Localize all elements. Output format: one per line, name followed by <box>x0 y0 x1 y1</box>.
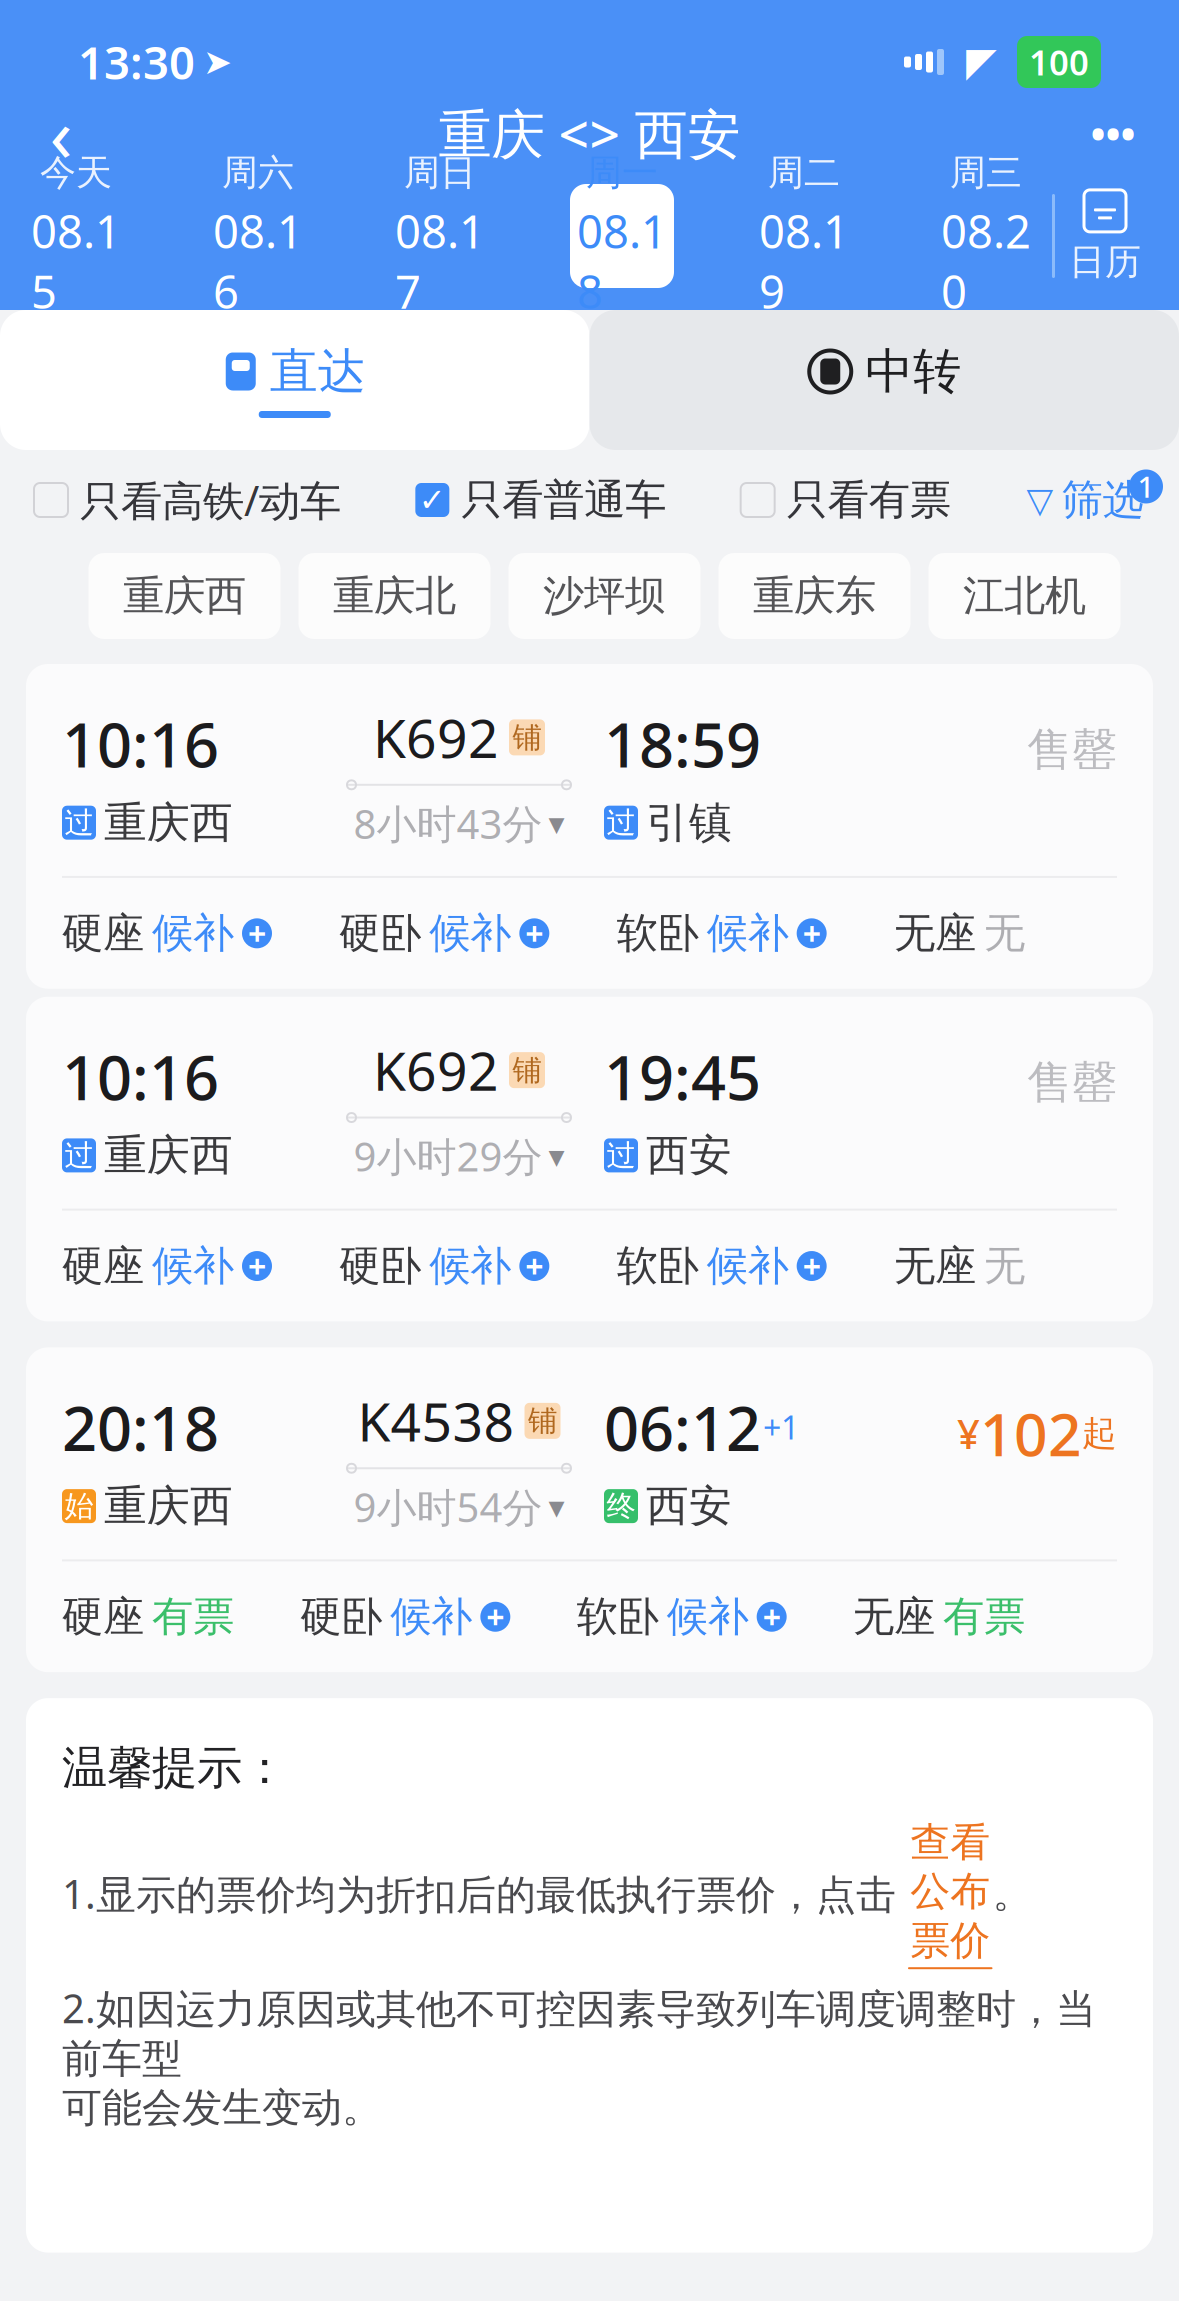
button[interactable]: 查看公布票价 <box>908 1818 992 1969</box>
staticText: 铺 <box>512 1052 541 1088</box>
staticText: 18:59 <box>604 703 761 784</box>
button[interactable]: 直达 <box>0 310 589 450</box>
staticText: 筛选 <box>1061 475 1143 525</box>
staticText: ✓ <box>419 482 446 518</box>
button[interactable]: 周一 <box>570 184 674 288</box>
staticText: K4538 <box>357 1385 514 1456</box>
button[interactable]: ✓ <box>415 475 666 525</box>
button[interactable]: 10:16 <box>26 997 1153 1321</box>
button[interactable]: 今天 <box>24 184 128 288</box>
staticText: 周二 <box>768 151 840 195</box>
staticText: 19:45 <box>604 1036 761 1117</box>
staticText: 候补 <box>429 908 511 959</box>
staticText: 周一 <box>586 151 658 195</box>
button[interactable]: 10:16 <box>26 664 1153 989</box>
staticText: 售罄 <box>1027 722 1117 778</box>
staticText: 重庆西 <box>104 796 233 849</box>
staticText: ‹ <box>49 83 72 183</box>
staticText: 候补 <box>390 1591 472 1642</box>
staticText: 候补 <box>429 1241 511 1291</box>
staticText: 只看普通车 <box>461 475 666 525</box>
staticText: ••• <box>1090 106 1135 159</box>
staticText: 重庆西 <box>123 571 246 621</box>
staticText: 重庆西 <box>104 1129 233 1182</box>
staticText: 。 <box>992 1869 1032 1918</box>
button[interactable]: 日历 <box>1055 184 1155 288</box>
staticText: 周六 <box>222 151 294 195</box>
staticText: 温馨提示： <box>62 1740 287 1796</box>
staticText: 08.20 <box>941 201 1031 321</box>
button[interactable]: ▽ <box>1025 467 1145 533</box>
button[interactable]: 重庆北 <box>298 553 490 639</box>
staticText: 可能会发生变动。 <box>62 2083 382 2133</box>
staticText: 有票 <box>152 1591 234 1642</box>
staticText: 日历 <box>1069 240 1141 284</box>
button[interactable]: 沙坪坝 <box>508 553 700 639</box>
staticText: 10:16 <box>62 703 219 784</box>
staticText: 铺 <box>512 719 541 755</box>
button[interactable]: 周二 <box>752 184 856 288</box>
staticText: 硬座 <box>62 908 144 959</box>
staticText: + <box>763 1595 781 1638</box>
staticText: 软卧 <box>617 1241 699 1291</box>
staticText: + <box>525 1245 543 1287</box>
staticText: 江北机 <box>963 571 1086 621</box>
staticText: 08.16 <box>213 201 303 321</box>
staticText: 软卧 <box>617 908 699 959</box>
button[interactable]: 重庆西 <box>88 553 280 639</box>
staticText: 13:30 <box>78 32 195 92</box>
staticText: + <box>803 912 821 955</box>
staticText: 引镇 <box>646 796 732 849</box>
staticText: 硬卧 <box>300 1591 382 1642</box>
staticText: 1.显示的票价均为折扣后的最低执行票价，点击 <box>62 1867 908 1920</box>
staticText: 无 <box>984 1241 1025 1291</box>
button[interactable]: 只看有票 <box>741 475 951 525</box>
staticText: 周三 <box>950 151 1022 195</box>
button[interactable]: 周三 <box>934 184 1038 288</box>
button[interactable]: 20:18 <box>26 1347 1153 1672</box>
staticText: 8小时43分 <box>353 797 542 850</box>
staticText: 候补 <box>152 1241 234 1291</box>
staticText: 重庆东 <box>753 571 876 621</box>
staticText: + <box>525 912 543 955</box>
staticText: 始 <box>64 1488 93 1524</box>
staticText: 候补 <box>152 908 234 959</box>
staticText: 08.19 <box>759 201 849 321</box>
staticText: 2.如因运力原因或其他不可控因素导致列车调度调整时，当前车型 <box>62 1981 1096 2083</box>
staticText: 直达 <box>270 342 366 401</box>
staticText: 06:12 <box>604 1386 761 1468</box>
staticText: 有票 <box>943 1591 1025 1642</box>
button[interactable]: 只看高铁/动车 <box>34 473 341 527</box>
staticText: 今天 <box>40 151 112 195</box>
button[interactable]: 返回 <box>16 93 106 173</box>
staticText: 售罄 <box>1027 1055 1117 1110</box>
button[interactable]: 更多 <box>1063 93 1163 173</box>
staticText: 20:18 <box>62 1386 219 1468</box>
staticText: 西安 <box>646 1129 732 1182</box>
staticText: 硬座 <box>62 1591 144 1642</box>
staticText: 铺 <box>528 1403 557 1439</box>
staticText: 08.15 <box>31 201 121 321</box>
staticText: 硬卧 <box>339 908 421 959</box>
staticText: 重庆 <> 西安 <box>438 98 740 168</box>
button[interactable]: 周六 <box>206 184 310 288</box>
staticText: ➤ <box>203 42 232 82</box>
button[interactable]: 江北机 <box>928 553 1120 639</box>
staticText: 08.17 <box>395 201 485 321</box>
staticText: K692 <box>373 1035 499 1105</box>
button[interactable]: 重庆东 <box>718 553 910 639</box>
staticText: 无座 <box>894 1241 976 1291</box>
staticText: 终 <box>606 1488 635 1524</box>
staticText: 08.18 <box>577 201 667 321</box>
staticText: 100 <box>1029 39 1089 85</box>
staticText: 硬卧 <box>339 1241 421 1291</box>
staticText: 无座 <box>853 1591 935 1642</box>
staticText: 1 <box>1137 467 1154 506</box>
staticText: + <box>486 1595 504 1638</box>
button[interactable]: 周日 <box>388 184 492 288</box>
button[interactable]: 中转 <box>589 310 1179 450</box>
staticText: 10:16 <box>62 1036 219 1117</box>
staticText: 102 <box>980 1394 1082 1472</box>
staticText: ▾ <box>548 805 564 841</box>
staticText: + <box>248 912 266 955</box>
